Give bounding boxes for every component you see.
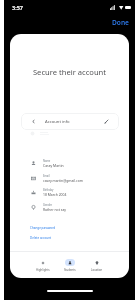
button[interactable]: Back [21,113,119,130]
staticText: Gender [43,203,53,207]
other: Edit [104,119,109,124]
staticText: Done [112,18,129,27]
button[interactable]: Name [10,156,129,170]
button[interactable]: Email [10,171,129,185]
button[interactable]: Delete account [30,235,52,241]
staticText: 18 March 2004 [43,192,67,197]
button[interactable]: Location [83,259,110,272]
staticText: Birthday [43,188,54,192]
staticText: Secure their account [10,67,129,77]
staticText: Change password [30,226,56,230]
staticText: Delete account [30,236,52,240]
staticText: Location [91,268,103,272]
staticText: Name [43,159,51,163]
staticText: Highlights [36,268,50,272]
other: Back [31,119,36,124]
staticText: casey.martin@gmail.com [43,178,83,183]
button[interactable]: Gender [10,200,129,214]
button[interactable]: Students [56,259,83,272]
staticText: Casey Martin [43,163,64,168]
button[interactable]: Highlights [29,259,56,272]
staticText: 3:57 [12,4,23,11]
staticText: Email [43,174,50,178]
staticText: Students [64,268,76,272]
staticText: Rather not say [43,207,67,212]
button[interactable]: Done [110,17,131,28]
button[interactable]: Birthday [10,185,129,199]
button[interactable]: Change password [30,225,56,231]
staticText: Account info [45,119,70,125]
